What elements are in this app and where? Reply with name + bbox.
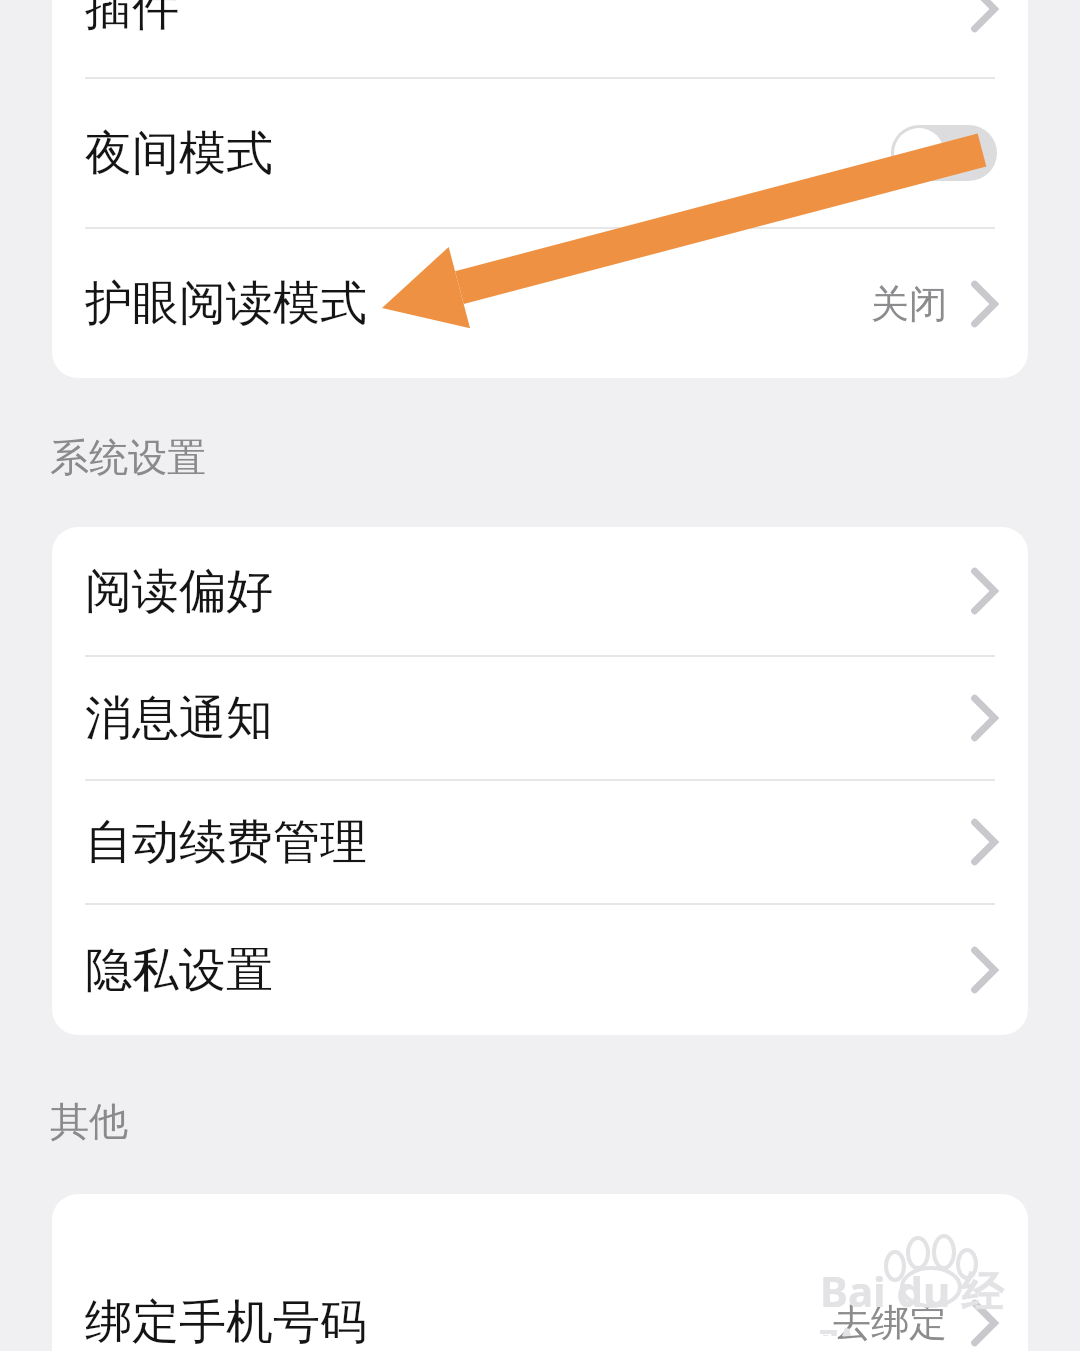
staticText: 阅读偏好 [85,562,273,621]
staticText: 其他 [50,1097,128,1146]
other: Eye-care reading mode [971,281,997,327]
button[interactable]: Night mode, off [891,125,997,181]
staticText: 隐私设置 [85,941,273,1000]
other: Reading preferences [971,568,997,614]
button[interactable]: 阅读偏好 [52,527,1028,655]
staticText: Bai du 经验 [820,1262,1030,1336]
other: Auto-renewal management [971,819,997,865]
staticText: 夜间模式 [85,124,273,183]
button[interactable]: 插件 [52,0,1028,77]
staticText: 系统设置 [50,433,206,482]
staticText: 去绑定 [833,1299,947,1347]
staticText: 消息通知 [85,689,273,748]
other: Privacy settings [971,947,997,993]
staticText: 关闭 [871,280,947,328]
button[interactable]: 绑定手机号码 [52,1194,1028,1351]
staticText: 自动续费管理 [85,813,367,872]
staticText: 插件 [85,0,179,38]
other: Plugins [971,0,997,32]
button[interactable]: 消息通知 [52,657,1028,779]
staticText: 护眼阅读模式 [85,274,367,333]
button[interactable]: 隐私设置 [52,905,1028,1035]
button[interactable]: 夜间模式 [52,79,1028,227]
staticText: 绑定手机号码 [85,1293,367,1351]
button[interactable]: 自动续费管理 [52,781,1028,903]
button[interactable]: 护眼阅读模式 [52,229,1028,378]
other: Bind phone number [971,1300,997,1346]
other: Notifications [971,695,997,741]
